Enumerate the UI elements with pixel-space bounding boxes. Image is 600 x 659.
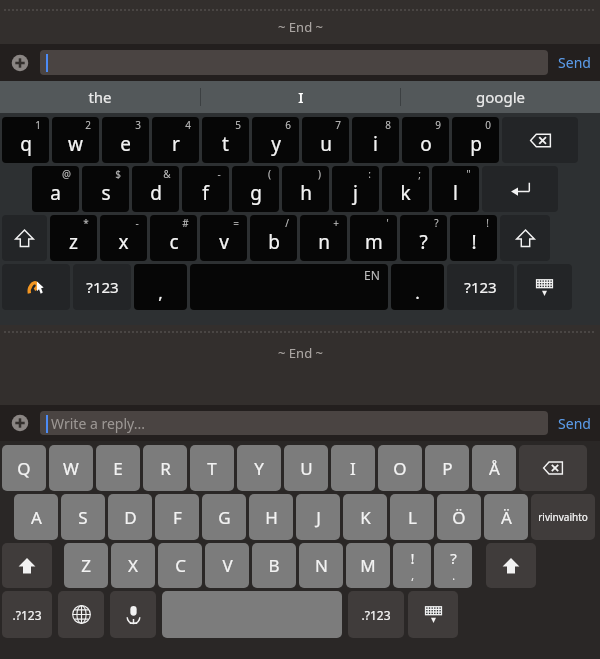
button[interactable]: Voice input <box>110 591 156 638</box>
button[interactable]: H <box>249 494 293 540</box>
staticText: P <box>442 457 453 480</box>
button[interactable]: J <box>296 494 340 540</box>
button[interactable]: @ <box>32 166 79 212</box>
button[interactable]: ' <box>350 215 397 261</box>
staticText: .?123 <box>361 607 391 623</box>
button[interactable]: .?123 <box>348 591 404 638</box>
button[interactable]: Backspace <box>519 445 587 491</box>
button[interactable]: Add attachment <box>0 44 40 81</box>
button[interactable]: U <box>284 445 328 491</box>
button[interactable]: 0 <box>452 117 499 163</box>
button[interactable]: ! <box>393 543 431 588</box>
staticText: + <box>333 216 339 230</box>
button[interactable]: $ <box>82 166 129 212</box>
button[interactable]: & <box>132 166 179 212</box>
button[interactable]: Y <box>237 445 281 491</box>
staticText: v <box>219 229 229 255</box>
button[interactable]: * <box>50 215 97 261</box>
button[interactable]: B <box>252 543 296 588</box>
button[interactable]: ? <box>434 543 472 588</box>
button[interactable]: Write a reply... <box>40 411 548 435</box>
button[interactable]: X <box>111 543 155 588</box>
button[interactable]: = <box>200 215 247 261</box>
button[interactable]: E <box>96 445 140 491</box>
button[interactable]: ?123 <box>447 264 514 310</box>
button[interactable]: Shift right <box>486 543 536 588</box>
button[interactable]: Change language <box>58 591 104 638</box>
button[interactable]: 5 <box>202 117 249 163</box>
staticText: C <box>175 554 186 577</box>
button[interactable]: / <box>250 215 297 261</box>
button[interactable]: 3 <box>102 117 149 163</box>
button[interactable]: Add attachment <box>0 405 40 441</box>
button[interactable]: 7 <box>302 117 349 163</box>
button[interactable]: F <box>155 494 199 540</box>
button[interactable]: ?123 <box>73 264 131 310</box>
button[interactable]: C <box>158 543 202 588</box>
button[interactable]: L <box>390 494 434 540</box>
button[interactable] <box>40 50 548 75</box>
staticText: ? <box>450 548 457 568</box>
button[interactable]: G <box>202 494 246 540</box>
button[interactable]: 6 <box>252 117 299 163</box>
staticText: Send <box>558 53 591 72</box>
button[interactable]: ) <box>282 166 329 212</box>
button[interactable]: Send <box>548 44 600 81</box>
button[interactable]: T <box>190 445 234 491</box>
button[interactable]: google <box>401 81 600 113</box>
button[interactable]: D <box>108 494 152 540</box>
button[interactable]: Hide keyboard <box>408 591 458 638</box>
button[interactable]: - <box>182 166 229 212</box>
button[interactable]: . <box>391 264 444 310</box>
button[interactable]: - <box>100 215 147 261</box>
button[interactable]: # <box>150 215 197 261</box>
button[interactable]: .?123 <box>2 591 52 638</box>
button[interactable]: rivinvaihto <box>531 494 595 540</box>
button[interactable]: K <box>343 494 387 540</box>
button[interactable]: Space <box>190 264 388 310</box>
button[interactable]: : <box>332 166 379 212</box>
button[interactable]: Hide keyboard <box>517 264 572 310</box>
button[interactable]: 4 <box>152 117 199 163</box>
button[interactable]: Shift <box>2 215 47 261</box>
button[interactable]: 2 <box>52 117 99 163</box>
button[interactable]: I <box>331 445 375 491</box>
button[interactable]: ! <box>450 215 497 261</box>
button[interactable]: Å <box>472 445 516 491</box>
button[interactable]: P <box>425 445 469 491</box>
button[interactable]: Gesture typing <box>2 264 70 310</box>
button[interactable]: 9 <box>402 117 449 163</box>
button[interactable]: N <box>299 543 343 588</box>
button[interactable]: Z <box>64 543 108 588</box>
button[interactable]: " <box>432 166 479 212</box>
button[interactable]: R <box>143 445 187 491</box>
button[interactable]: Ä <box>484 494 528 540</box>
button[interactable]: ; <box>382 166 429 212</box>
button[interactable]: the <box>0 81 200 113</box>
button[interactable]: I <box>201 81 400 113</box>
button[interactable]: Shift right <box>500 215 550 261</box>
button[interactable]: ( <box>232 166 279 212</box>
button[interactable]: O <box>378 445 422 491</box>
staticText: N <box>315 554 328 577</box>
button[interactable]: A <box>14 494 58 540</box>
button[interactable]: S <box>61 494 105 540</box>
button[interactable]: Backspace <box>502 117 578 163</box>
staticText: w <box>68 131 83 157</box>
button[interactable]: ? <box>400 215 447 261</box>
button[interactable]: W <box>49 445 93 491</box>
staticText: Y <box>254 457 264 480</box>
button[interactable]: Ö <box>437 494 481 540</box>
staticText: K <box>360 506 371 529</box>
button[interactable]: Shift <box>2 543 52 588</box>
button[interactable]: , <box>134 264 187 310</box>
button[interactable]: Q <box>2 445 46 491</box>
button[interactable]: V <box>205 543 249 588</box>
button[interactable]: Send <box>548 405 600 441</box>
button[interactable]: 8 <box>352 117 399 163</box>
button[interactable]: 1 <box>2 117 49 163</box>
button[interactable]: Space <box>162 591 342 638</box>
button[interactable]: + <box>300 215 347 261</box>
button[interactable]: M <box>346 543 390 588</box>
button[interactable]: Enter <box>482 166 558 212</box>
